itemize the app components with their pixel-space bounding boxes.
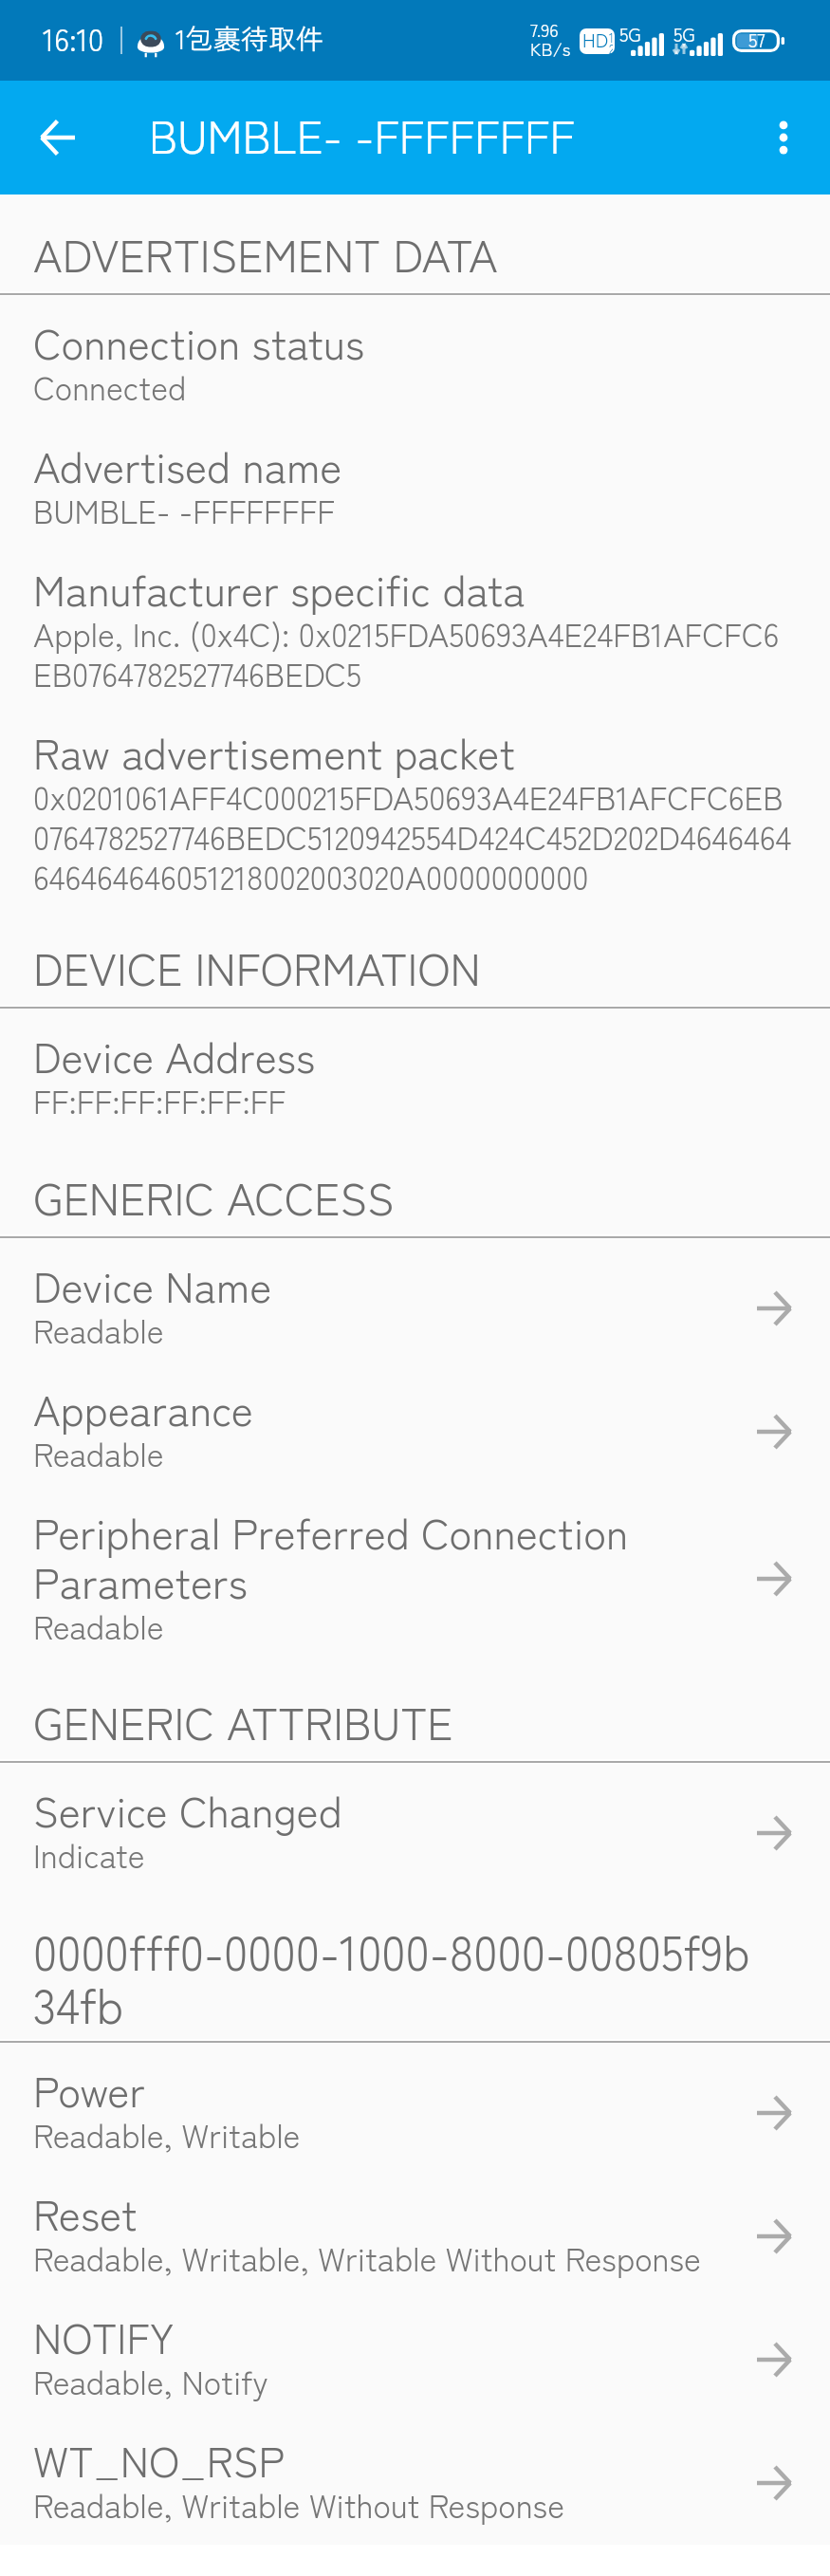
button[interactable]: Advertised name — [0, 445, 830, 532]
button[interactable]: WT_NO_RSP — [0, 2439, 830, 2527]
staticText: DEVICE INFORMATION — [33, 944, 830, 996]
staticText: Device Address — [33, 1035, 316, 1083]
staticText: Readable, Notify — [33, 2363, 268, 2403]
staticText: 1包裹待取件 — [175, 25, 324, 56]
staticText: WT_NO_RSP — [33, 2439, 286, 2487]
button[interactable]: Power — [0, 2069, 830, 2157]
button[interactable]: More options — [743, 97, 824, 178]
staticText: Connected — [33, 369, 187, 409]
staticText: Indicate — [33, 1837, 145, 1877]
button[interactable]: 0000fff0-0000-1000-8000-00805f9b 34fb — [0, 1928, 830, 2034]
staticText: HD — [582, 31, 609, 51]
staticText: GENERIC ACCESS — [33, 1174, 830, 1226]
staticText: Reset — [33, 2193, 138, 2240]
staticText: ADVERTISEMENT DATA — [33, 231, 830, 283]
button[interactable]: Service Changed — [0, 1789, 830, 1877]
staticText: Raw advertisement packet — [33, 732, 515, 779]
staticText: Appearance — [33, 1388, 253, 1436]
staticText: 7.96 KB/s — [530, 22, 571, 60]
staticText: FF:FF:FF:FF:FF:FF — [33, 1083, 286, 1122]
staticText: 5G — [673, 26, 695, 46]
staticText: 57 — [748, 31, 765, 51]
staticText: 0x0201061AFF4C000215FDA50693A4E24FB1AFCF… — [33, 779, 795, 899]
staticText: GENERIC ATTRIBUTE — [33, 1698, 830, 1751]
staticText: Readable, Writable — [33, 2117, 301, 2157]
button[interactable]: Appearance — [0, 1388, 830, 1475]
button[interactable]: Connection status — [0, 322, 830, 409]
staticText: BUMBLE- -FFFFFFFF — [33, 492, 336, 532]
staticText: Readable, Writable, Writable Without Res… — [33, 2240, 701, 2280]
staticText: Service Changed — [33, 1789, 342, 1837]
button[interactable]: Manufacturer specific data — [0, 568, 830, 695]
staticText: NOTIFY — [33, 2316, 175, 2363]
staticText: Peripheral Preferred Connection Paramete… — [33, 1510, 744, 1608]
button[interactable]: Device Address — [0, 1035, 830, 1122]
button[interactable]: NOTIFY — [0, 2316, 830, 2403]
staticText: Device Name — [33, 1265, 272, 1312]
button[interactable]: Device Name — [0, 1265, 830, 1352]
staticText: Apple, Inc. (0x4C): 0x0215FDA50693A4E24F… — [33, 616, 795, 695]
staticText: BUMBLE- -FFFFFFFF — [149, 112, 575, 164]
staticText: Manufacturer specific data — [33, 568, 526, 616]
staticText: 1 2 — [609, 28, 613, 54]
staticText: 5G — [619, 26, 641, 46]
staticText: Readable, Writable Without Response — [33, 2487, 564, 2527]
staticText: 16:10 — [43, 24, 104, 58]
staticText: Readable — [33, 1436, 164, 1475]
staticText: Advertised name — [33, 445, 342, 492]
staticText: 0000fff0-0000-1000-8000-00805f9b 34fb — [33, 1928, 750, 2034]
staticText: Power — [33, 2069, 145, 2117]
button[interactable]: Navigate up — [17, 97, 99, 178]
button[interactable]: Reset — [0, 2193, 830, 2280]
staticText: Readable — [33, 1312, 164, 1352]
staticText: Connection status — [33, 322, 365, 369]
button[interactable]: Raw advertisement packet — [0, 732, 830, 899]
staticText: Readable — [33, 1608, 164, 1648]
button[interactable]: Peripheral Preferred Connection Paramete… — [0, 1510, 830, 1648]
